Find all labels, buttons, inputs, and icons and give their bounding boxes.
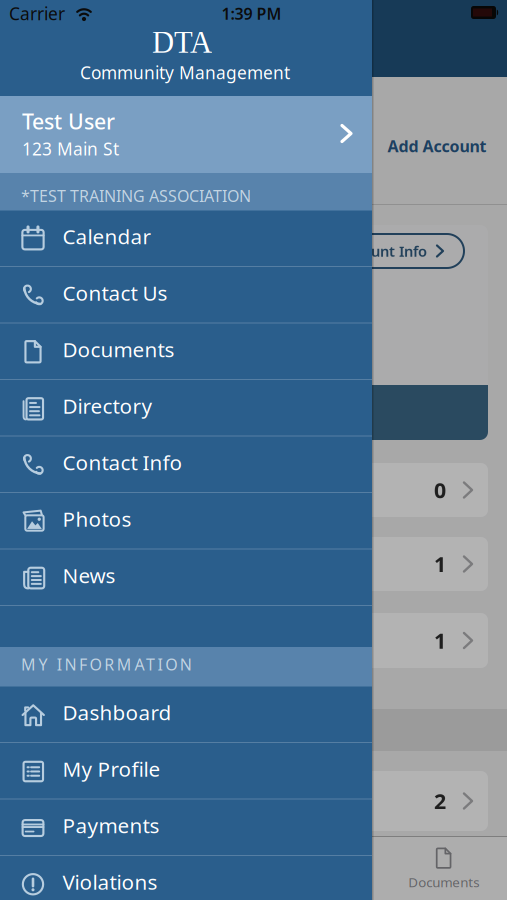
staticText: Community Management: [80, 61, 290, 84]
staticText: 0: [434, 476, 446, 504]
button[interactable]: Contact Info: [0, 436, 372, 493]
button[interactable]: Payments: [0, 799, 372, 856]
button[interactable]: Documents: [380, 837, 507, 900]
button[interactable]: 1: [19, 613, 488, 668]
staticText: Calendar: [62, 222, 151, 250]
staticText: News: [62, 561, 115, 589]
button[interactable]: Calendar: [127, 837, 254, 900]
staticText: Violations: [62, 868, 157, 896]
button[interactable]: My Profile: [0, 743, 372, 799]
button[interactable]: Payments: [253, 837, 380, 900]
button[interactable]: Directory: [0, 380, 372, 436]
button[interactable]: Test User: [0, 96, 372, 173]
staticText: *TEST TRAINING ASSOCIATION: [21, 185, 251, 206]
staticText: My Profile: [62, 755, 160, 783]
button[interactable]: Documents: [0, 323, 372, 380]
button[interactable]: Photos: [0, 493, 372, 549]
button[interactable]: 1: [19, 537, 488, 591]
button[interactable]: Calendar: [0, 210, 372, 267]
button[interactable]: Add Account: [387, 135, 486, 157]
button[interactable]: Dashboard: [0, 837, 127, 900]
staticText: 1: [434, 550, 446, 578]
staticText: Dashboard: [30, 873, 97, 891]
staticText: Contact Info: [62, 448, 182, 476]
staticText: Documents: [62, 335, 174, 363]
staticText: Account Info: [338, 241, 427, 261]
button[interactable]: Contact Us: [0, 267, 372, 323]
staticText: Payments: [62, 811, 159, 839]
staticText: Contact Us: [62, 279, 167, 307]
staticText: Test User: [22, 107, 115, 135]
staticText: Directory: [62, 392, 152, 420]
staticText: 2: [434, 787, 446, 815]
button[interactable]: Dashboard: [0, 686, 372, 743]
button[interactable]: 0: [19, 463, 488, 517]
button[interactable]: Account Info: [319, 234, 464, 268]
staticText: Carrier: [9, 2, 65, 25]
button[interactable]: 2: [19, 771, 488, 831]
staticText: Documents: [408, 873, 479, 891]
staticText: Photos: [62, 505, 131, 533]
button[interactable]: News: [0, 549, 372, 606]
staticText: Dashboard: [62, 698, 171, 726]
staticText: Add Account: [387, 135, 486, 157]
staticText: DTA: [152, 25, 212, 59]
staticText: MY INFORMATION: [21, 654, 192, 675]
staticText: 123 Main St: [22, 137, 119, 160]
button[interactable]: Violations: [0, 856, 372, 900]
staticText: 1:39 PM: [221, 3, 281, 24]
staticText: 1: [434, 626, 446, 655]
